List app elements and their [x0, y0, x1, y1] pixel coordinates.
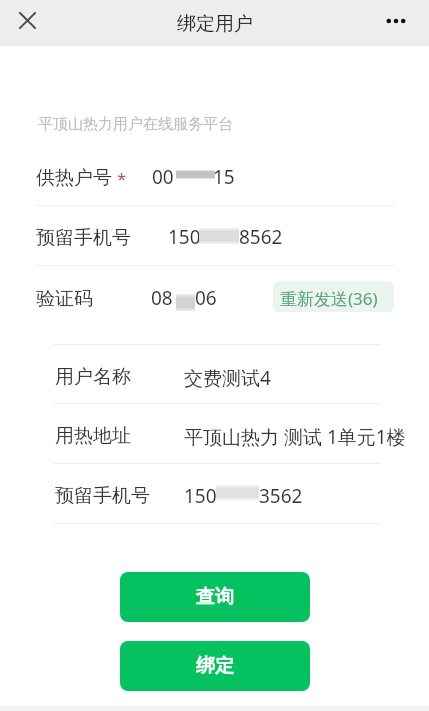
staticText: 预留手机号 — [55, 484, 150, 508]
staticText: 00 — [152, 164, 174, 190]
staticText: 3562 — [259, 483, 303, 509]
staticText: 06 — [195, 285, 217, 311]
staticText: 交费测试4 — [184, 365, 271, 391]
staticText: 08 — [151, 285, 173, 311]
staticText: 重新发送(36) — [280, 287, 378, 310]
staticText: 用热地址 — [55, 424, 131, 448]
staticText: 平顶山热力 测试 1单元1楼 — [184, 424, 406, 450]
button[interactable]: Close — [11, 4, 44, 37]
button[interactable]: More options — [379, 4, 412, 37]
staticText: 查询 — [196, 585, 234, 609]
staticText: 用户名称 — [55, 365, 131, 389]
button[interactable]: 绑定 — [120, 641, 310, 691]
staticText: 平顶山热力用户在线服务平台 — [38, 115, 233, 134]
staticText: 150 — [184, 483, 217, 509]
staticText: 8562 — [239, 224, 283, 250]
staticText: 绑定 — [196, 654, 234, 678]
staticText: 验证码 — [36, 287, 93, 311]
staticText: 150 — [168, 224, 201, 250]
button[interactable]: 重新发送(36) — [273, 281, 394, 312]
staticText: 供热户号 — [36, 166, 112, 190]
staticText: 预留手机号 — [36, 226, 131, 250]
staticText: * — [117, 167, 127, 190]
staticText: 15 — [213, 164, 235, 190]
staticText: 绑定用户 — [177, 12, 253, 36]
button[interactable]: 查询 — [120, 572, 310, 622]
